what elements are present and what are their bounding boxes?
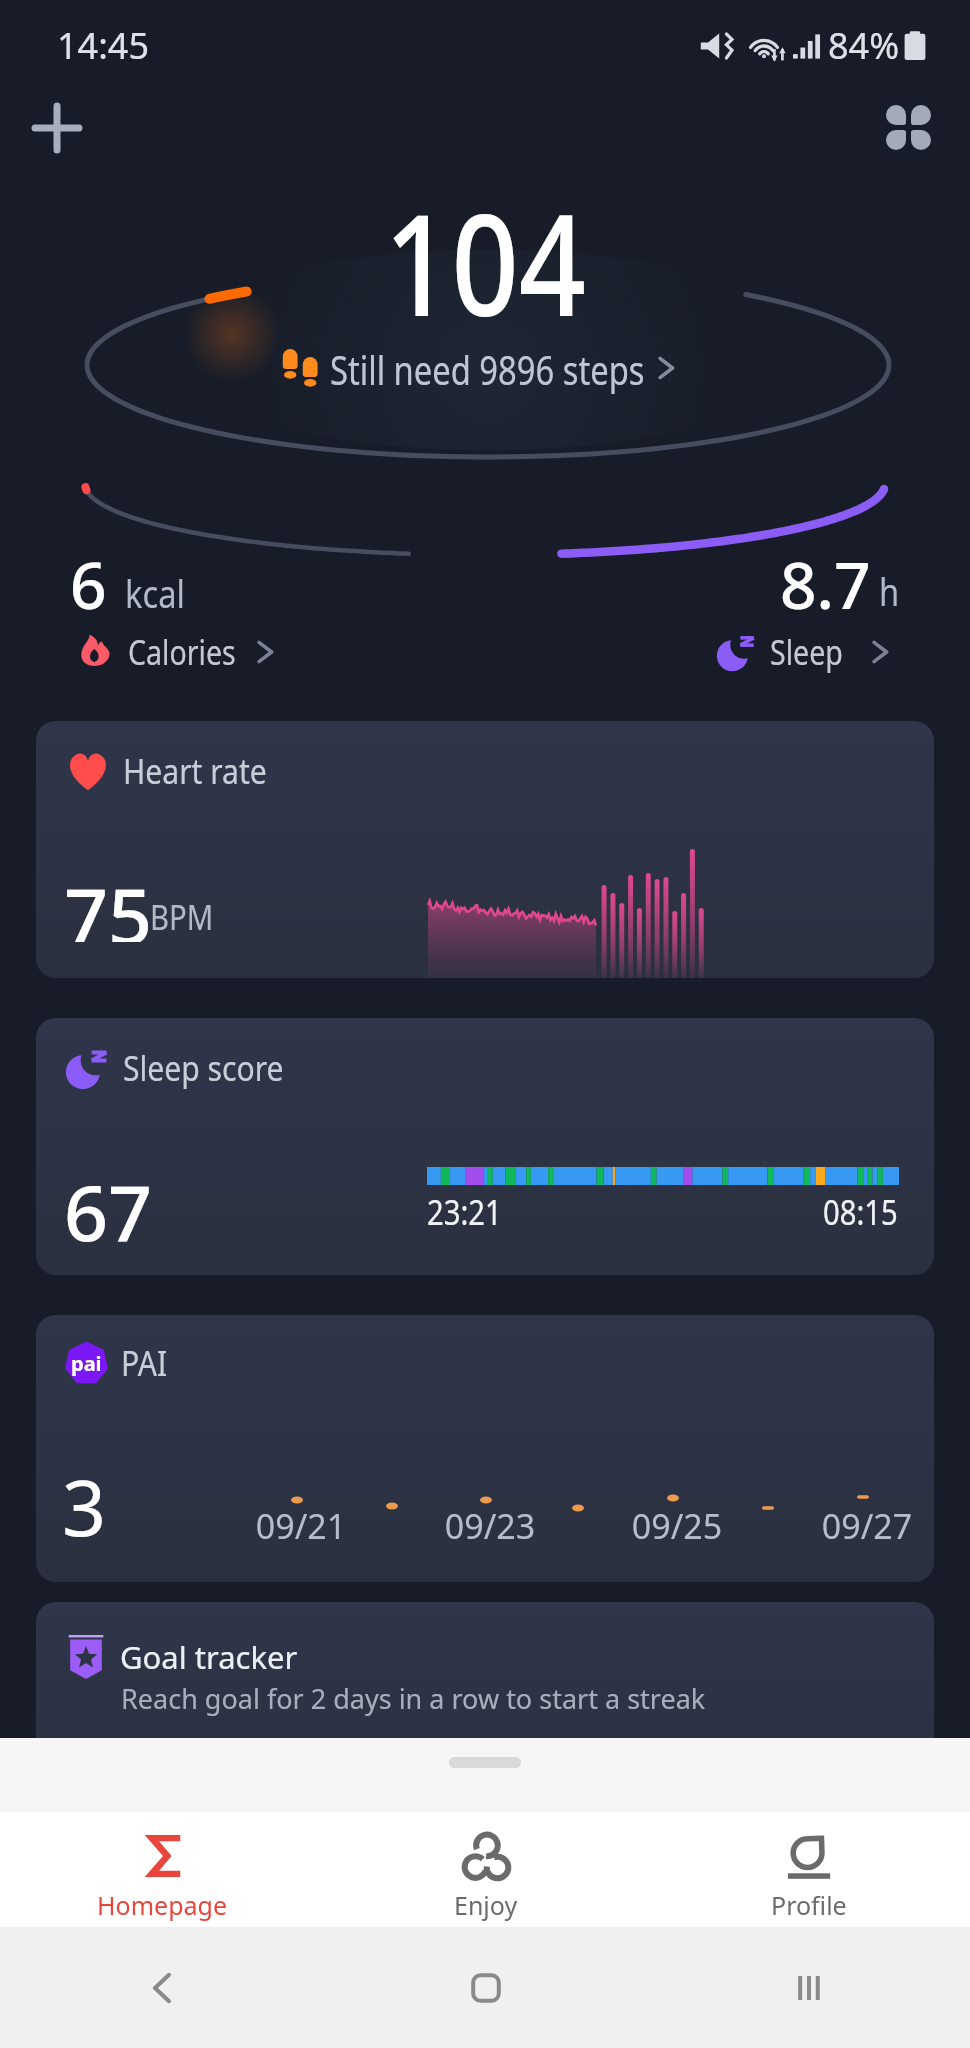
button[interactable]: Homepage (0, 1812, 324, 1927)
staticText: 09/25 (612, 1503, 742, 1549)
staticText: Sleep score (123, 1044, 284, 1092)
button[interactable]: Profile (647, 1812, 970, 1927)
staticText: Homepage (97, 1888, 228, 1922)
button[interactable]: pai (36, 1315, 934, 1582)
staticText: 14:45 (57, 21, 150, 70)
button[interactable]: Devices (873, 92, 943, 162)
staticText: Profile (771, 1888, 847, 1922)
staticText: 09/27 (802, 1503, 932, 1549)
staticText: Heart rate (123, 747, 267, 795)
staticText: 08:15 (823, 1189, 898, 1235)
staticText: h (879, 565, 900, 617)
button[interactable]: Enjoy (324, 1812, 647, 1927)
button[interactable]: Add (22, 93, 92, 163)
staticText: 75 (64, 862, 153, 942)
button[interactable]: Heart rate (36, 721, 934, 978)
staticText: 8.7 (780, 541, 871, 611)
button[interactable]: Goal tracker (36, 1602, 934, 1792)
staticText: Calories (128, 629, 236, 675)
button[interactable]: Sleep (712, 627, 902, 677)
staticText: BPM (150, 894, 214, 940)
staticText: 3 (62, 1454, 107, 1559)
staticText: Sleep (770, 629, 843, 675)
staticText: Still need 9896 steps (330, 342, 645, 394)
staticText: 67 (64, 1159, 153, 1264)
staticText: 23:21 (427, 1189, 502, 1235)
button[interactable]: Back (0, 1927, 324, 2048)
button[interactable]: Home (324, 1927, 647, 2048)
button[interactable]: Recents (647, 1927, 970, 2048)
staticText: kcal (125, 567, 185, 619)
staticText: PAI (121, 1339, 167, 1387)
staticText: 104 (384, 166, 587, 357)
staticText: 84% (828, 21, 900, 70)
button[interactable]: Still need 9896 steps (276, 342, 688, 394)
staticText: 09/23 (425, 1503, 555, 1549)
staticText: Reach goal for 2 days in a row to start … (121, 1680, 706, 1717)
staticText: pai (71, 1350, 102, 1377)
staticText: Enjoy (454, 1888, 518, 1922)
staticText: Goal tracker (120, 1636, 298, 1678)
button[interactable]: Calories (70, 627, 290, 677)
staticText: 6 (70, 541, 107, 628)
staticText: 09/21 (236, 1503, 366, 1549)
button[interactable]: Sleep score (36, 1018, 934, 1275)
